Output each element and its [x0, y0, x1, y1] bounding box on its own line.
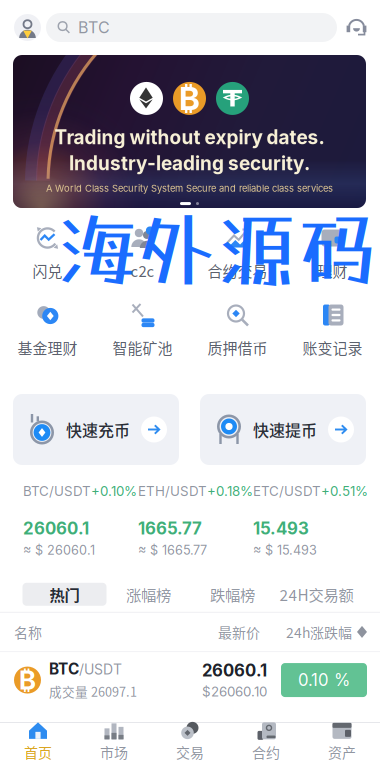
staticText: 市场 [100, 742, 128, 760]
staticText: 基金理财 [17, 337, 77, 358]
staticText: 1665.77 [138, 518, 202, 538]
staticText: ≈ $ 15.493 [253, 542, 317, 558]
staticText: ₿ [179, 79, 200, 118]
staticText: BTC/USDT [23, 483, 91, 499]
staticText: 跌幅榜 [210, 583, 255, 605]
staticText: ETC/USDT [253, 483, 321, 499]
staticText: 闪兑 [32, 260, 62, 281]
button[interactable]: 质押借币 [190, 303, 285, 354]
staticText: $26060.10 [202, 684, 267, 700]
staticText: +0.10% [91, 483, 137, 499]
button[interactable]: 24H交易额 [274, 583, 358, 606]
button[interactable]: 交易 [152, 721, 228, 760]
button[interactable]: 快速充币 [13, 394, 179, 465]
staticText: 账变记录 [302, 337, 362, 358]
button[interactable]: 账变记录 [285, 303, 380, 354]
staticText: 合约交易 [207, 260, 267, 281]
button[interactable]: Profile [0, 14, 46, 41]
staticText: 理财 [317, 260, 347, 281]
staticText: 最新价 [218, 622, 260, 642]
staticText: BTC [78, 18, 110, 37]
button[interactable]: 合约交易 [190, 226, 285, 277]
staticText: /USDT [79, 661, 122, 678]
button[interactable]: ₿ [0, 655, 380, 705]
button[interactable]: 跌幅榜 [190, 583, 274, 606]
button[interactable]: 闪兑 [0, 226, 95, 277]
staticText: 热门 [49, 583, 79, 605]
button[interactable]: 市场 [76, 721, 152, 760]
button[interactable]: Customer support [337, 17, 380, 38]
staticText: 0.10 % [298, 670, 350, 690]
staticText: A World Class Security System Secure and… [46, 183, 333, 194]
button[interactable]: 涨幅榜 [106, 583, 190, 606]
staticText: +0.51% [321, 483, 368, 499]
staticText: 15.493 [253, 518, 309, 538]
staticText: c2c [130, 260, 154, 281]
button[interactable]: 快速提币 [200, 394, 366, 465]
staticText: 海外源码 [57, 202, 377, 296]
staticText: 资产 [328, 742, 356, 760]
staticText: 26060.1 [23, 518, 89, 538]
staticText: 26060.1 [202, 660, 267, 681]
staticText: BTC [49, 660, 79, 678]
staticText: 首页 [24, 742, 52, 760]
staticText: 质押借币 [207, 337, 267, 358]
button[interactable]: 基金理财 [0, 303, 95, 354]
staticText: Industry-leading security. [69, 152, 310, 175]
staticText: ≈ $ 1665.77 [138, 542, 207, 558]
button[interactable]: 资产 [304, 721, 380, 760]
button[interactable]: 首页 [0, 721, 76, 760]
staticText: 智能矿池 [112, 337, 172, 358]
staticText: 交易 [176, 742, 204, 760]
staticText: ₿ [19, 664, 36, 696]
staticText: +0.18% [207, 483, 253, 499]
staticText: 快速充币 [66, 418, 130, 441]
staticText: Trading without expiry dates. [54, 126, 324, 149]
staticText: 合约 [252, 742, 280, 760]
button[interactable]: 理财 [285, 226, 380, 277]
staticText: 名称 [14, 622, 42, 642]
staticText: 涨幅榜 [126, 583, 171, 605]
staticText: ≈ $ 26060.1 [23, 542, 95, 558]
button[interactable]: 热门 [22, 583, 106, 606]
button[interactable]: c2c [95, 226, 190, 277]
staticText: 24H交易额 [279, 583, 353, 605]
button[interactable]: 合约 [228, 721, 304, 760]
staticText: 24h涨跌幅 [286, 622, 352, 642]
button[interactable]: BTC [46, 13, 337, 42]
staticText: 快速提币 [253, 418, 317, 441]
staticText: ETH/USDT [138, 483, 207, 499]
staticText: 成交量 26097.1 [49, 682, 137, 700]
button[interactable]: 智能矿池 [95, 303, 190, 354]
